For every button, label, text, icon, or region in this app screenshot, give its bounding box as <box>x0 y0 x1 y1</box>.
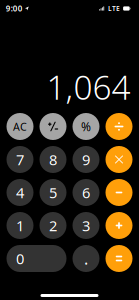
button[interactable]: Equals <box>105 245 132 272</box>
button[interactable]: 4 <box>6 179 33 206</box>
button[interactable]: Multiply <box>105 146 132 173</box>
button[interactable]: 6 <box>72 179 99 206</box>
button[interactable]: . <box>72 245 99 272</box>
staticText: 3 <box>82 216 90 235</box>
button[interactable]: % <box>72 113 99 140</box>
button[interactable]: 8 <box>39 146 66 173</box>
button[interactable]: 3 <box>72 212 99 239</box>
button[interactable]: 0 <box>6 245 66 272</box>
staticText: 1,064 <box>46 65 130 109</box>
staticText: % <box>81 118 91 134</box>
staticText: 5 <box>49 183 57 202</box>
button[interactable]: 7 <box>6 146 33 173</box>
staticText: 0 <box>16 249 24 268</box>
staticText: 4 <box>16 183 24 202</box>
staticText: 8 <box>49 150 57 169</box>
button[interactable]: AC <box>6 113 33 140</box>
button[interactable]: Divide <box>105 113 132 140</box>
button[interactable]: 5 <box>39 179 66 206</box>
button[interactable]: 9 <box>72 146 99 173</box>
staticText: 2 <box>49 216 57 235</box>
staticText: LTE <box>108 4 120 13</box>
button[interactable]: Add <box>105 212 132 239</box>
staticText: 9 <box>82 150 90 169</box>
button[interactable]: Toggle sign <box>39 113 66 140</box>
staticText: 7 <box>16 150 24 169</box>
button[interactable]: 1 <box>6 212 33 239</box>
button[interactable]: 2 <box>39 212 66 239</box>
button[interactable]: Subtract <box>105 179 132 206</box>
staticText: 6 <box>82 183 90 202</box>
staticText: . <box>84 248 88 269</box>
staticText: 9:00 <box>6 3 23 14</box>
staticText: 1 <box>16 216 24 235</box>
staticText: AC <box>13 119 27 134</box>
